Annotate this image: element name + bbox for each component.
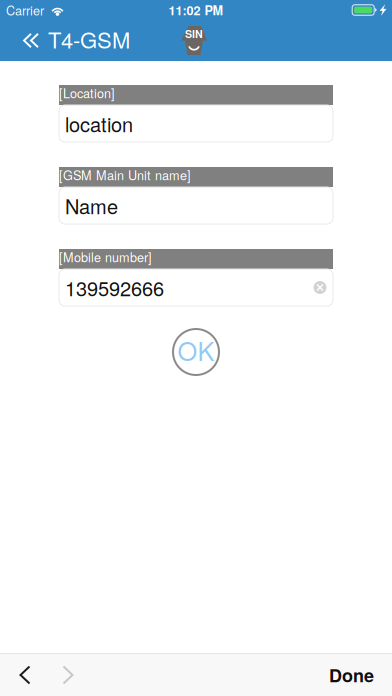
staticText: [GSM Main Unit name] xyxy=(59,166,191,184)
staticText: location xyxy=(65,109,133,138)
staticText: OK xyxy=(177,332,214,368)
staticText: Done xyxy=(329,662,374,688)
button[interactable]: Next field xyxy=(46,654,89,696)
button[interactable]: T4-GSM xyxy=(0,20,138,61)
staticText: [Location] xyxy=(59,84,115,102)
staticText: Name xyxy=(65,191,118,220)
button[interactable]: OK xyxy=(169,325,223,379)
staticText: SIN xyxy=(185,26,203,41)
staticText: Carrier xyxy=(6,1,44,19)
staticText: 11:02 PM xyxy=(168,1,223,19)
staticText: 139592666 xyxy=(65,273,164,302)
button[interactable]: Done xyxy=(311,654,392,696)
staticText: T4-GSM xyxy=(48,23,130,55)
staticText: [Mobile number] xyxy=(59,248,152,266)
button[interactable]: Clear text xyxy=(309,276,331,298)
button[interactable]: Previous field xyxy=(3,654,46,696)
